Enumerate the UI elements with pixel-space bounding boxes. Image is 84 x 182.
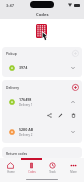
staticText: 3:47 bbox=[6, 3, 14, 8]
staticText: 176498 bbox=[19, 97, 32, 102]
button[interactable]: Share bbox=[45, 111, 53, 119]
button[interactable]: Track bbox=[42, 160, 63, 176]
button[interactable]: 176498 bbox=[2, 93, 82, 110]
button[interactable]: Codes bbox=[21, 160, 42, 176]
button[interactable]: Add Delivery code bbox=[71, 83, 79, 91]
staticText: 5280 AB bbox=[19, 127, 34, 132]
button[interactable]: Add Pickup code bbox=[71, 49, 79, 57]
staticText: Pickup bbox=[6, 51, 17, 55]
staticText: More bbox=[70, 170, 77, 174]
staticText: Return codes bbox=[6, 151, 28, 155]
staticText: Track bbox=[49, 170, 56, 174]
staticText: Delivery 1 bbox=[19, 103, 33, 107]
button[interactable]: Delete bbox=[69, 111, 77, 119]
staticText: Delivery 2 bbox=[19, 133, 33, 137]
staticText: Codes bbox=[28, 170, 36, 174]
button[interactable]: More bbox=[63, 160, 84, 176]
staticText: Codes bbox=[36, 12, 49, 18]
button[interactable]: Home bbox=[0, 160, 21, 176]
staticText: 3974 bbox=[19, 65, 28, 70]
staticText: Delivery bbox=[6, 85, 20, 89]
button[interactable]: 3974 bbox=[2, 58, 82, 77]
staticText: Home bbox=[7, 170, 15, 174]
button[interactable]: 5280 AB bbox=[2, 120, 82, 143]
button[interactable]: Edit bbox=[56, 111, 64, 119]
